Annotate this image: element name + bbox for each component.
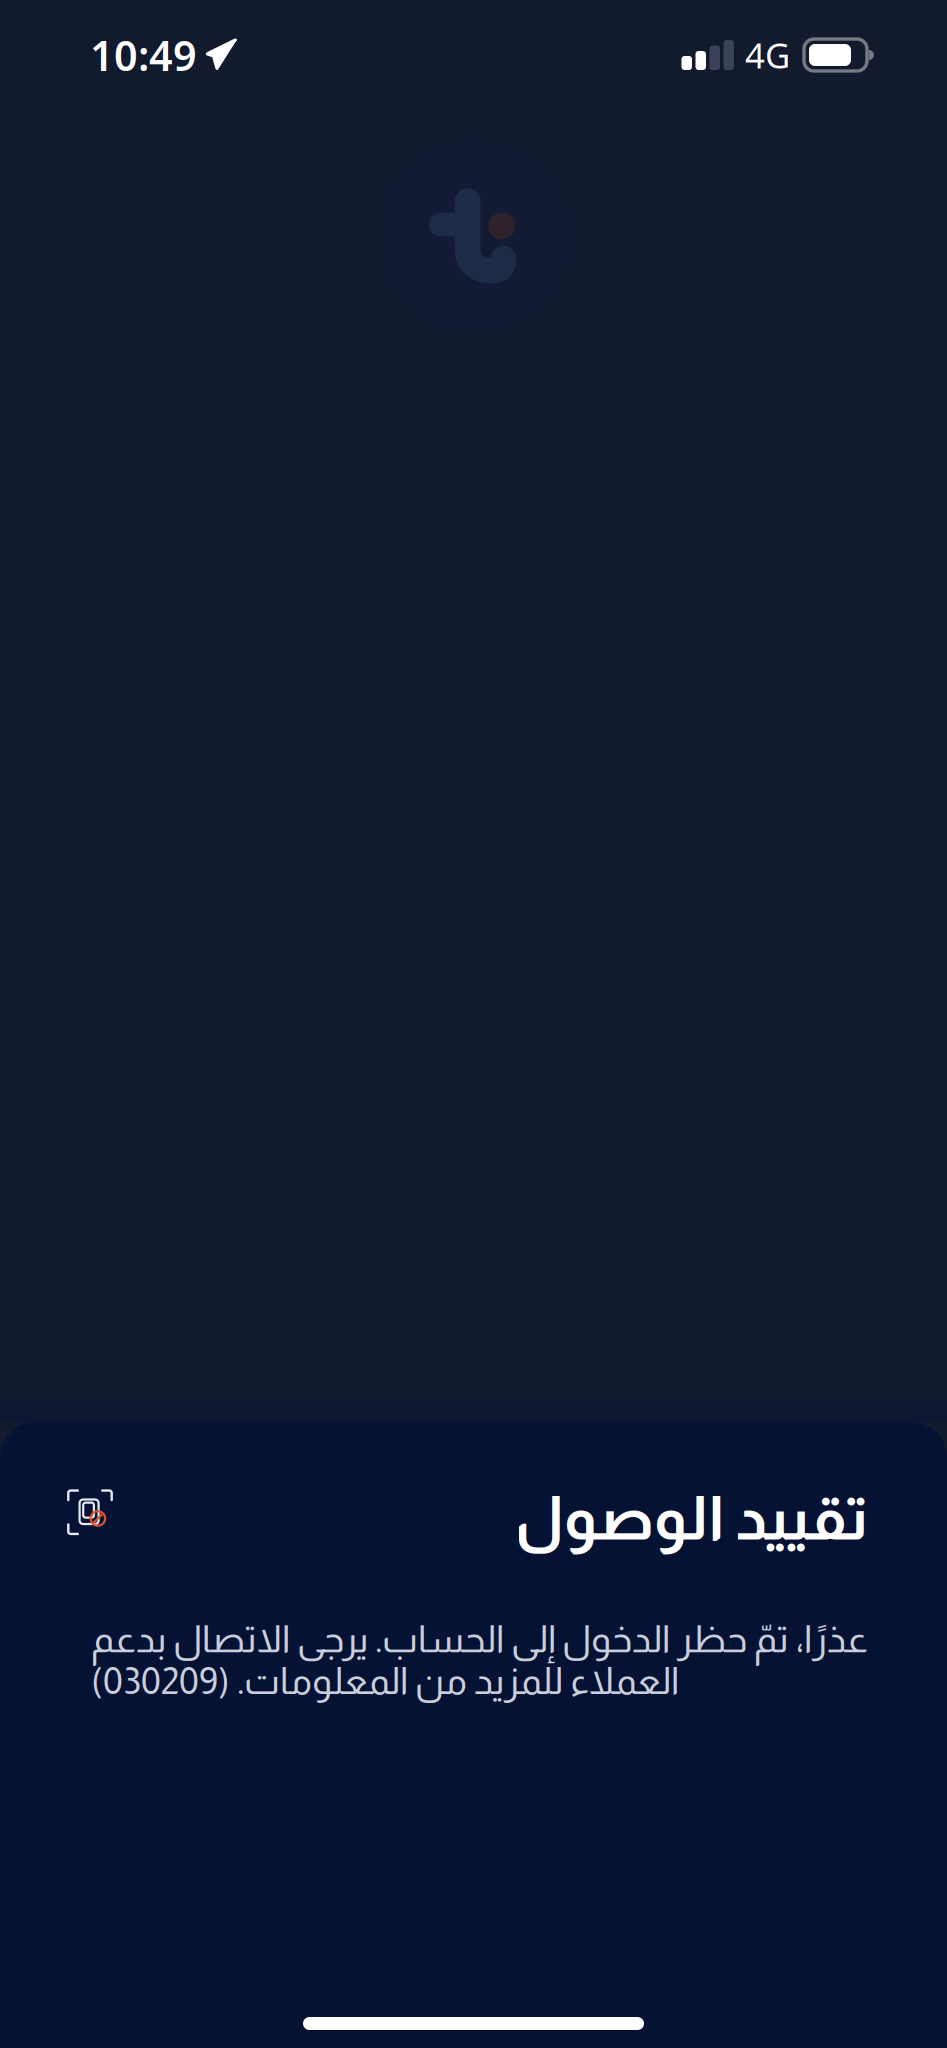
staticText: عذرًا، تمّ حظر الدخول إلى الحساب. يرجى ا… — [91, 1618, 868, 1702]
staticText: تقييد الوصول — [514, 1484, 868, 1552]
staticText: 4G — [745, 32, 790, 78]
staticText: 10:49 — [90, 28, 197, 82]
